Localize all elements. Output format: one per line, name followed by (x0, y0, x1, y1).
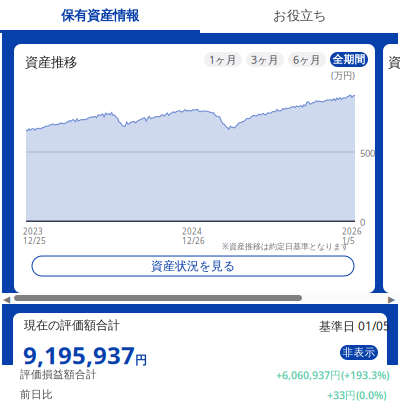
staticText: 保有資産情報 (61, 7, 139, 24)
button[interactable]: 全期間 (330, 52, 368, 67)
staticText: 12/25 (23, 236, 46, 246)
staticText: ▶ (388, 294, 395, 305)
staticText: 500 (360, 147, 375, 159)
staticText: 円 (135, 353, 147, 368)
staticText: ※資産推移は約定日基準となります (222, 241, 349, 252)
staticText: +33円(0.0%) (327, 388, 386, 402)
staticText: お役立ち (273, 7, 327, 24)
staticText: +6,060,937円(+193.3%) (276, 368, 389, 382)
button[interactable]: 3ヶ月 (246, 52, 284, 67)
staticText: 2024 (182, 226, 202, 237)
staticText: 0 (360, 216, 365, 228)
staticText: 全期間 (332, 53, 365, 66)
staticText: 1/5 (342, 236, 355, 246)
staticText: 2026 (342, 226, 362, 237)
staticText: 資 (388, 54, 400, 70)
staticText: 12/26 (182, 236, 205, 246)
staticText: 前日比 (20, 388, 53, 401)
button[interactable]: 6ヶ月 (288, 52, 326, 67)
button[interactable]: 非表示 (340, 345, 378, 360)
staticText: 9,195,937 (23, 339, 135, 371)
staticText: ◀ (3, 294, 10, 305)
staticText: 6ヶ月 (293, 52, 321, 67)
button[interactable]: 資産状況を見る (32, 256, 354, 276)
staticText: 2023 (23, 226, 43, 237)
staticText: 資産推移 (25, 54, 77, 70)
button[interactable]: 1ヶ月 (204, 52, 242, 67)
staticText: 基準日 01/05 (319, 318, 390, 334)
staticText: 3ヶ月 (251, 52, 279, 67)
button[interactable]: 保有資産情報 (0, 0, 200, 31)
staticText: 1ヶ月 (209, 52, 237, 67)
button[interactable]: お役立ち (200, 0, 400, 31)
staticText: (万円) (331, 69, 355, 81)
staticText: 評価損益額合計 (20, 368, 97, 381)
staticText: 非表示 (342, 346, 375, 359)
staticText: 現在の評価額合計 (24, 318, 120, 333)
staticText: 資産状況を見る (151, 259, 235, 273)
